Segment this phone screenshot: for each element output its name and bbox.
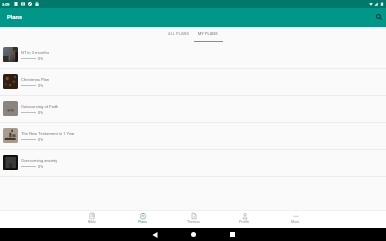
staticText: ALL PLANS (168, 31, 189, 36)
staticText: Christmas Plan (21, 77, 50, 82)
button[interactable]: Bible (66, 210, 117, 228)
button[interactable]: Back (135, 228, 174, 241)
staticText: 0% (38, 164, 44, 169)
staticText: Outsourcing of Faith (21, 104, 59, 109)
staticText: Plans (7, 13, 23, 20)
button[interactable]: More (270, 210, 321, 228)
button[interactable]: Plans (117, 210, 168, 228)
staticText: Themes (187, 220, 200, 224)
staticText: Overcoming anxiety (21, 158, 58, 163)
staticText: 0% (38, 83, 44, 88)
button[interactable]: Search (373, 11, 384, 22)
button[interactable]: Recents (213, 228, 252, 241)
staticText: The New Testament in 1 Year (21, 131, 75, 136)
button[interactable]: Christmas Plan (0, 69, 386, 96)
staticText: Profile (239, 220, 250, 224)
staticText: More (291, 220, 300, 224)
button[interactable]: Overcoming anxiety (0, 150, 386, 177)
button[interactable]: Themes (168, 210, 219, 228)
staticText: 3:09 (2, 2, 10, 7)
staticText: Bible (88, 220, 96, 224)
button[interactable]: Outsourcing of Faith (0, 96, 386, 123)
staticText: NT in 3 months (21, 50, 50, 55)
button[interactable]: Home (174, 228, 213, 241)
button[interactable]: Profile (219, 210, 270, 228)
button[interactable]: NT in 3 months (0, 42, 386, 69)
button[interactable]: The New Testament in 1 Year (0, 123, 386, 150)
staticText: 0% (38, 137, 44, 142)
button[interactable]: ALL PLANS (163, 27, 193, 42)
staticText: MY PLANS (198, 31, 218, 36)
staticText: Plans (138, 220, 147, 224)
staticText: 0% (38, 56, 44, 61)
button[interactable]: MY PLANS (193, 27, 223, 42)
staticText: 0% (38, 110, 44, 115)
